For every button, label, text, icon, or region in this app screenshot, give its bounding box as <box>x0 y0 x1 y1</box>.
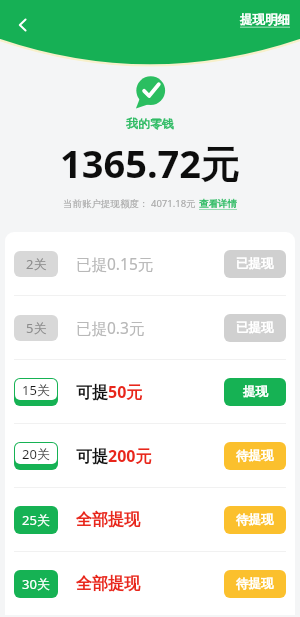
staticText: 25关 <box>22 511 50 529</box>
staticText: 1365.72元 <box>60 137 240 189</box>
staticText: 2关 <box>26 255 47 273</box>
button[interactable]: 待提现 <box>224 570 286 598</box>
staticText: 查看详情 <box>199 198 237 210</box>
staticText: 待提现 <box>236 448 274 464</box>
staticText: 20关 <box>22 445 50 463</box>
button[interactable]: 20关 <box>5 424 295 487</box>
staticText: 已提现 <box>236 320 274 336</box>
button[interactable]: 30关 <box>5 552 295 615</box>
staticText: 全部提现 <box>76 574 140 594</box>
staticText: 可提50元 <box>76 381 143 403</box>
staticText: 我的零钱 <box>126 116 174 131</box>
button[interactable]: 待提现 <box>224 506 286 534</box>
button[interactable]: Back <box>6 8 40 42</box>
staticText: 提现明细 <box>240 12 290 28</box>
button[interactable]: 15关 <box>5 360 295 423</box>
button[interactable]: 25关 <box>5 488 295 551</box>
button[interactable]: 5关 <box>5 296 295 359</box>
staticText: 5关 <box>26 319 47 337</box>
button[interactable]: 2关 <box>5 232 295 295</box>
staticText: 30关 <box>22 575 50 593</box>
staticText: 已提现 <box>236 256 274 272</box>
button[interactable]: 提现明细 <box>238 8 292 32</box>
button[interactable]: 已提现 <box>224 250 286 278</box>
button[interactable]: 查看详情 <box>199 198 237 210</box>
button[interactable]: 已提现 <box>224 314 286 342</box>
staticText: 已提0.3元 <box>76 317 145 338</box>
staticText: 全部提现 <box>76 510 140 530</box>
staticText: 待提现 <box>236 576 274 592</box>
staticText: 已提0.15元 <box>76 253 154 274</box>
button[interactable]: 提现 <box>224 378 286 406</box>
staticText: 提现 <box>243 384 268 400</box>
staticText: 当前账户提现额度： 4071.18元 <box>63 197 199 210</box>
staticText: 可提200元 <box>76 445 152 467</box>
staticText: 待提现 <box>236 512 274 528</box>
staticText: 15关 <box>22 381 50 399</box>
button[interactable]: 待提现 <box>224 442 286 470</box>
